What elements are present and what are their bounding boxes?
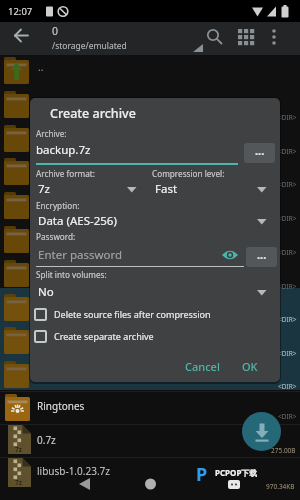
staticText: <DIR> bbox=[278, 349, 297, 358]
staticText: backup.7z bbox=[36, 142, 91, 158]
button[interactable] bbox=[152, 180, 268, 196]
staticText: <DIR> bbox=[278, 412, 297, 421]
staticText: 0 bbox=[52, 24, 59, 38]
staticText: 970.34KB bbox=[266, 482, 295, 491]
button[interactable]: OK bbox=[232, 354, 268, 378]
button[interactable] bbox=[0, 458, 300, 491]
button[interactable] bbox=[0, 392, 300, 425]
staticText: <DIR> bbox=[278, 180, 297, 189]
button[interactable] bbox=[36, 180, 138, 196]
staticText: 7z bbox=[15, 445, 22, 454]
staticText: Create separate archive bbox=[54, 330, 154, 342]
button[interactable] bbox=[70, 472, 100, 496]
button[interactable]: Delete source files after compression bbox=[34, 307, 264, 323]
staticText: Split into volumes: bbox=[36, 269, 107, 280]
staticText: 0.7z bbox=[37, 433, 56, 447]
staticText: Password: bbox=[36, 231, 76, 242]
staticText: <DIR> bbox=[278, 315, 297, 324]
staticText: Delete source files after compression bbox=[54, 308, 211, 320]
staticText: <DIR> bbox=[278, 382, 297, 391]
button[interactable] bbox=[242, 412, 281, 451]
staticText: Archive: bbox=[36, 128, 67, 139]
staticText: 7z bbox=[15, 478, 22, 487]
staticText: Data (AES-256) bbox=[38, 213, 117, 229]
staticText: <DIR> bbox=[278, 282, 297, 291]
staticText: Compression level: bbox=[152, 168, 225, 179]
button[interactable] bbox=[202, 24, 228, 52]
staticText: <DIR> bbox=[278, 248, 297, 257]
staticText: Enter password bbox=[38, 247, 123, 263]
staticText: libusb-1.0.23.7z bbox=[37, 464, 110, 478]
button[interactable]: ... bbox=[244, 143, 275, 163]
staticText: ... bbox=[257, 247, 267, 262]
staticText: <DIR> bbox=[278, 113, 297, 122]
button[interactable]: Create separate archive bbox=[34, 329, 264, 345]
staticText: P bbox=[196, 462, 208, 487]
button[interactable] bbox=[36, 282, 268, 299]
button[interactable] bbox=[6, 24, 36, 52]
staticText: 12:07 bbox=[8, 5, 33, 18]
button[interactable] bbox=[220, 248, 242, 264]
staticText: ... bbox=[255, 143, 265, 158]
button[interactable] bbox=[36, 212, 268, 228]
button[interactable] bbox=[30, 98, 280, 382]
button[interactable] bbox=[0, 425, 300, 458]
staticText: OK bbox=[242, 359, 258, 374]
staticText: Encryption: bbox=[36, 200, 80, 211]
staticText: No bbox=[38, 284, 54, 300]
staticText: 275.00B bbox=[271, 446, 296, 455]
button[interactable] bbox=[232, 24, 260, 52]
staticText: <DIR> bbox=[278, 147, 297, 156]
staticText: /storage/emulated bbox=[52, 40, 127, 52]
button[interactable] bbox=[138, 472, 164, 496]
button[interactable] bbox=[262, 24, 286, 52]
staticText: Cancel bbox=[185, 359, 220, 374]
staticText: PCPOP下载 bbox=[215, 467, 258, 478]
button[interactable]: ... bbox=[246, 247, 277, 267]
staticText: 7z bbox=[38, 181, 50, 197]
staticText: <DIR> bbox=[278, 214, 297, 223]
staticText: Ringtones bbox=[37, 399, 85, 413]
staticText: .. bbox=[38, 60, 44, 74]
staticText: Archive format: bbox=[36, 168, 96, 179]
staticText: Fast bbox=[155, 181, 178, 197]
staticText: Create archive bbox=[50, 105, 136, 122]
button[interactable]: Cancel bbox=[176, 354, 228, 378]
